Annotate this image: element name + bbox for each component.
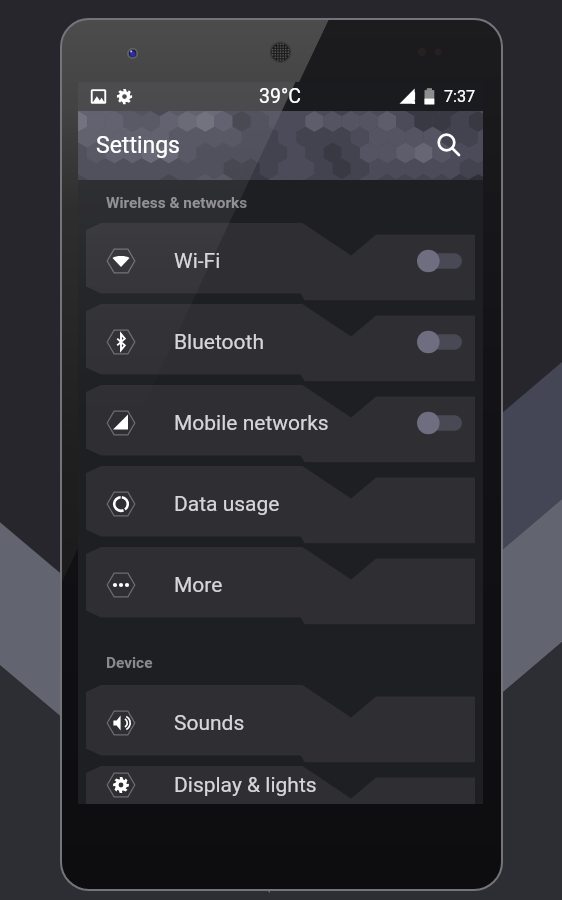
button[interactable]: Sounds (78, 685, 483, 766)
staticText: Display & lights (174, 773, 317, 798)
staticText: 39°C (258, 85, 302, 108)
staticText: Wi-Fi (174, 249, 221, 274)
staticText: Sounds (174, 711, 245, 736)
button[interactable]: Search (429, 125, 471, 167)
staticText: More (174, 573, 223, 598)
staticText: Wireless & networks (106, 194, 248, 212)
staticText: Device (106, 654, 153, 672)
staticText: 7:37 (444, 87, 476, 106)
button[interactable]: More (78, 547, 483, 628)
button[interactable]: Wi-Fi (78, 223, 483, 304)
staticText: Mobile networks (174, 411, 329, 436)
staticText: Data usage (174, 492, 280, 517)
staticText: Bluetooth (174, 330, 264, 355)
staticText: Settings (96, 132, 180, 159)
button[interactable]: Display & lights (78, 766, 483, 804)
button[interactable]: Bluetooth (78, 304, 483, 385)
button[interactable]: Mobile networks (78, 385, 483, 466)
button[interactable]: Data usage (78, 466, 483, 547)
